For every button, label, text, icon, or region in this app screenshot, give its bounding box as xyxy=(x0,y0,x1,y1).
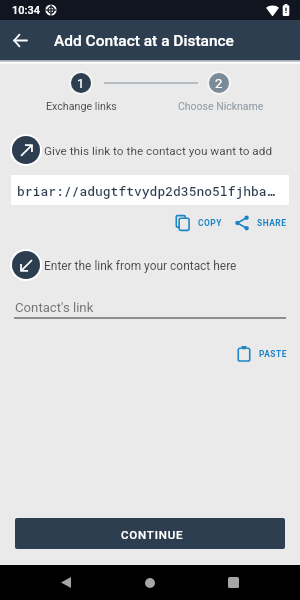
button[interactable]: Back xyxy=(46,565,86,600)
staticText: 10:34 xyxy=(12,4,40,17)
staticText: 1 xyxy=(77,76,85,91)
staticText: Give this link to the contact you want t… xyxy=(44,144,273,158)
button[interactable]: PASTE xyxy=(232,342,291,366)
button[interactable]: CONTINUE xyxy=(15,518,285,549)
staticText: COPY xyxy=(198,218,222,228)
button[interactable]: Navigate up xyxy=(6,26,34,54)
staticText: 2 xyxy=(215,76,223,91)
staticText: CONTINUE xyxy=(121,528,184,541)
button[interactable]: 1 xyxy=(71,73,91,93)
staticText: Choose Nickname xyxy=(178,100,264,112)
button[interactable]: SHARE xyxy=(230,211,291,235)
button[interactable]: Recent apps xyxy=(213,565,253,600)
staticText: SHARE xyxy=(257,218,287,228)
button[interactable]: 2 xyxy=(209,73,229,93)
staticText: briar://adugtftvydp2d35no5lfjhba… xyxy=(17,182,275,199)
staticText: PASTE xyxy=(259,349,287,359)
staticText: Enter the link from your contact here xyxy=(44,259,237,273)
staticText: Add Contact at a Distance xyxy=(54,32,234,50)
button[interactable]: Home xyxy=(130,565,170,600)
staticText: Exchange links xyxy=(46,100,117,113)
button[interactable]: COPY xyxy=(171,211,226,235)
staticText: Contact's link xyxy=(15,300,94,315)
